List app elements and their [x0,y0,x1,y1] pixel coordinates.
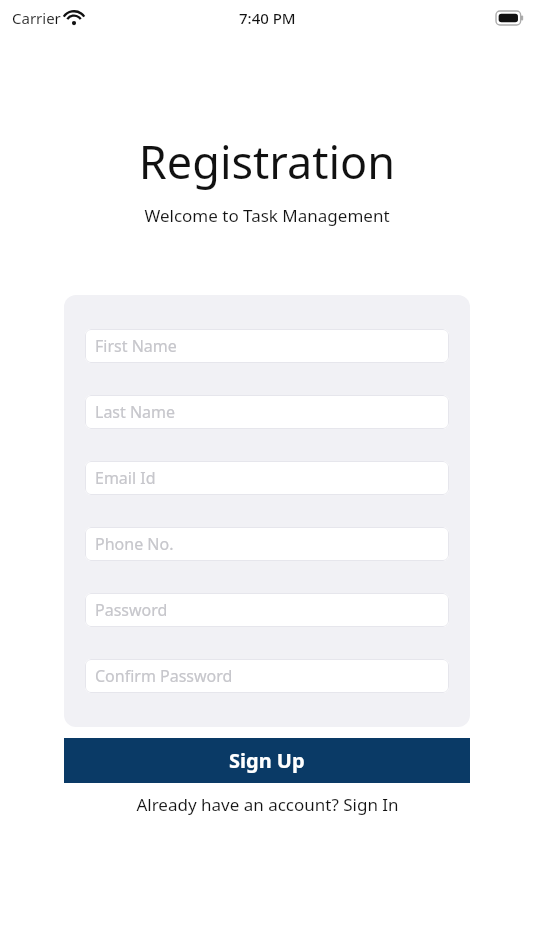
staticText: Phone No. [95,533,174,555]
staticText: Welcome to Task Management [0,204,534,227]
button[interactable]: Confirm Password [85,659,449,693]
staticText: Email Id [95,467,156,489]
staticText: Last Name [95,401,176,423]
staticText: Password [95,599,168,621]
button[interactable]: Already have an account? Sign In [0,793,534,816]
button[interactable]: Email Id [85,461,449,495]
staticText: First Name [95,335,177,357]
staticText: Carrier [12,8,61,28]
button[interactable]: Phone No. [85,527,449,561]
button[interactable]: Sign Up [64,738,470,783]
button[interactable]: First Name [85,329,449,363]
staticText: Registration [0,131,534,192]
staticText: Confirm Password [95,665,233,687]
staticText: 7:40 PM [239,8,296,28]
button[interactable]: Password [85,593,449,627]
button[interactable]: Last Name [85,395,449,429]
staticText: Sign Up [229,747,305,774]
staticText: Already have an account? Sign In [136,793,399,816]
